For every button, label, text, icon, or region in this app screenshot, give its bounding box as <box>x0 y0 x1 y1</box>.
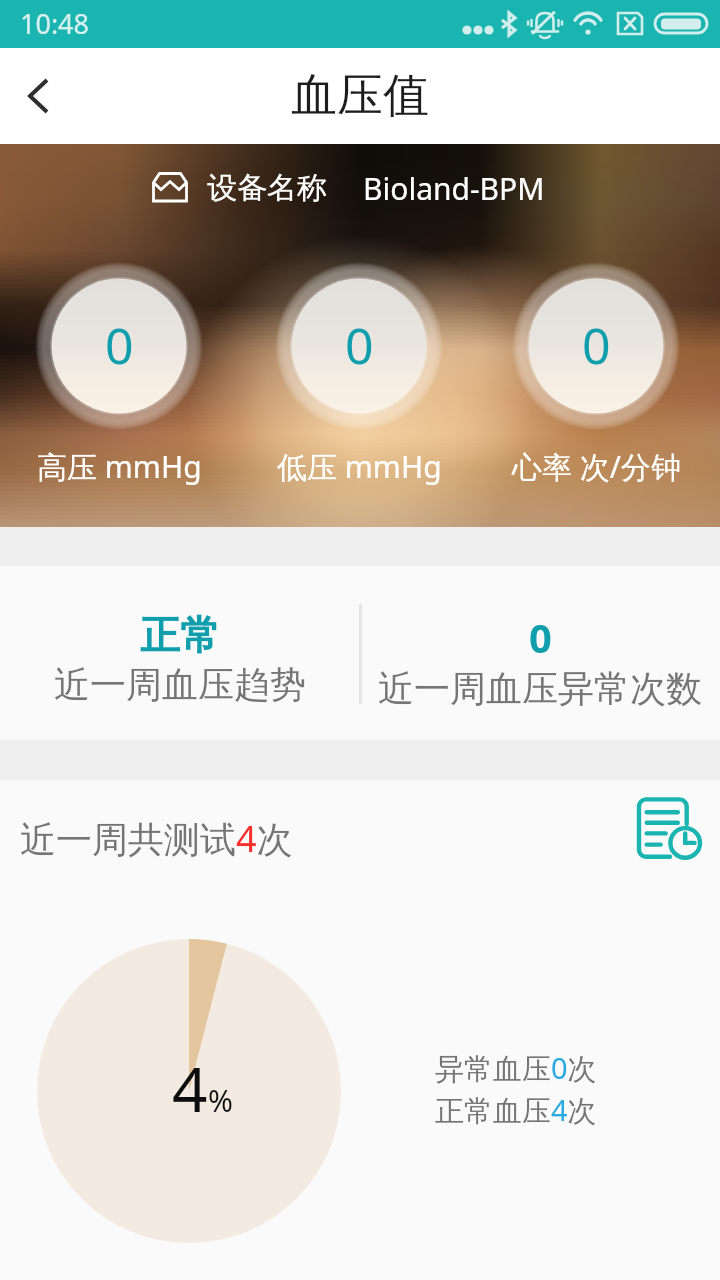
staticText: 低压 mmHg <box>277 446 442 487</box>
staticText: 血压值 <box>291 67 429 125</box>
staticText: 0 <box>582 311 611 379</box>
staticText: 10:48 <box>20 5 90 42</box>
staticText: 正常 <box>140 610 220 660</box>
button[interactable]: 0 <box>360 566 720 711</box>
staticText: 正常血压4次 <box>435 1090 597 1130</box>
staticText: 0 <box>529 610 552 664</box>
staticText: Bioland-BPM <box>363 168 545 208</box>
staticText: 高压 mmHg <box>37 446 202 487</box>
staticText: 近一周血压异常次数 <box>378 666 702 711</box>
staticText: 设备名称 <box>207 169 327 207</box>
staticText: 4 <box>172 1046 208 1130</box>
button[interactable]: 正常 <box>0 566 360 707</box>
staticText: 0 <box>345 311 374 379</box>
staticText: 异常血压0次 <box>435 1048 597 1088</box>
staticText: 心率 次/分钟 <box>512 446 681 487</box>
button[interactable]: Back <box>0 48 78 144</box>
staticText: % <box>208 1080 233 1121</box>
staticText: 0 <box>105 311 134 379</box>
button[interactable]: History records <box>624 783 716 875</box>
staticText: 近一周血压趋势 <box>54 662 306 707</box>
staticText: 近一周共测试4次 <box>20 814 293 863</box>
